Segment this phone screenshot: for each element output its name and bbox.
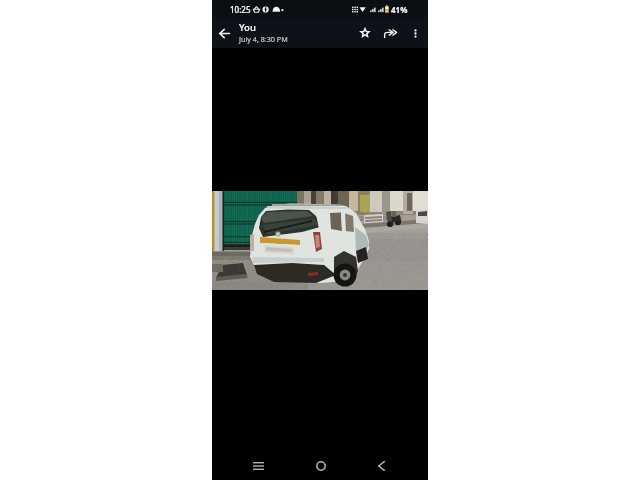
staticText: 10:25 <box>230 4 251 15</box>
button[interactable]: Home <box>308 453 333 478</box>
staticText: You <box>239 21 256 34</box>
button[interactable]: Recents <box>246 453 271 478</box>
button[interactable]: Forward <box>377 18 403 48</box>
staticText: 41% <box>391 4 408 15</box>
button[interactable]: Star <box>353 18 377 48</box>
button[interactable]: More options <box>403 18 428 48</box>
button[interactable]: Back <box>212 18 236 48</box>
staticText: July 4, 8:30 PM <box>239 34 288 44</box>
button[interactable]: Back <box>369 453 394 478</box>
